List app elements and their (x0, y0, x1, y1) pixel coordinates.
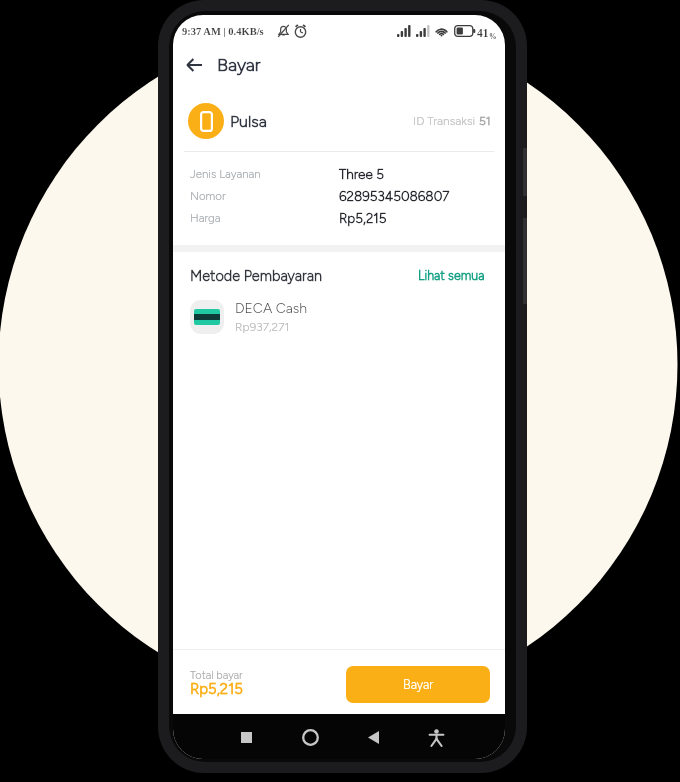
staticText: Harga (190, 211, 221, 225)
button[interactable]: Lihat semua (413, 264, 489, 286)
staticText: ID Transaksi (413, 114, 479, 128)
staticText: Rp937,271 (235, 320, 290, 334)
staticText: Jenis Layanan (190, 167, 261, 181)
button[interactable]: Back (356, 720, 390, 754)
button[interactable]: Bayar (346, 666, 490, 703)
button[interactable]: Recents (229, 720, 263, 754)
staticText: 41 (477, 27, 489, 40)
staticText: Lihat semua (418, 268, 485, 283)
staticText: 9:37 AM | 0.4KB/s (182, 26, 264, 38)
button[interactable]: Home (293, 720, 327, 754)
staticText: Rp5,215 (190, 680, 243, 698)
staticText: 62895345086807 (339, 188, 450, 204)
staticText: Nomor (190, 189, 226, 203)
button[interactable]: DECA Cash (173, 298, 505, 336)
staticText: % (489, 32, 497, 40)
staticText: Bayar (403, 677, 434, 692)
button[interactable]: Accessibility (419, 720, 453, 754)
staticText: 51 (479, 114, 491, 128)
staticText: Three 5 (339, 166, 384, 182)
staticText: Rp5,215 (339, 210, 387, 226)
staticText: Pulsa (230, 112, 267, 131)
staticText: Total bayar (190, 669, 243, 682)
staticText: Metode Pembayaran (190, 267, 323, 284)
button[interactable]: Back (180, 51, 208, 79)
staticText: Bayar (217, 54, 261, 76)
staticText: DECA Cash (235, 300, 308, 317)
